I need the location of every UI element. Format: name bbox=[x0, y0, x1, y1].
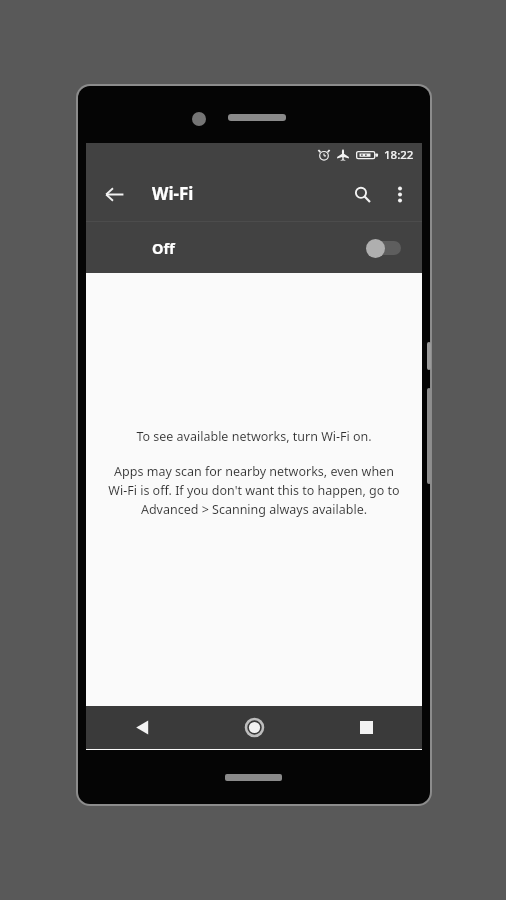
button[interactable]: Navigate up bbox=[94, 174, 134, 214]
button[interactable]: Home bbox=[198, 706, 310, 749]
staticText: Apps may scan for nearby networks, even … bbox=[106, 463, 402, 518]
button[interactable]: More options bbox=[382, 176, 418, 212]
button[interactable]: Recent apps bbox=[310, 706, 422, 749]
staticText: 18:22 bbox=[384, 147, 414, 163]
staticText: To see available networks, turn Wi-Fi on… bbox=[136, 428, 372, 445]
button[interactable]: Back bbox=[86, 706, 198, 749]
button[interactable]: Search bbox=[342, 174, 382, 214]
staticText: Wi-Fi bbox=[152, 182, 194, 205]
staticText: Off bbox=[152, 238, 175, 258]
button[interactable]: Off bbox=[86, 222, 422, 273]
